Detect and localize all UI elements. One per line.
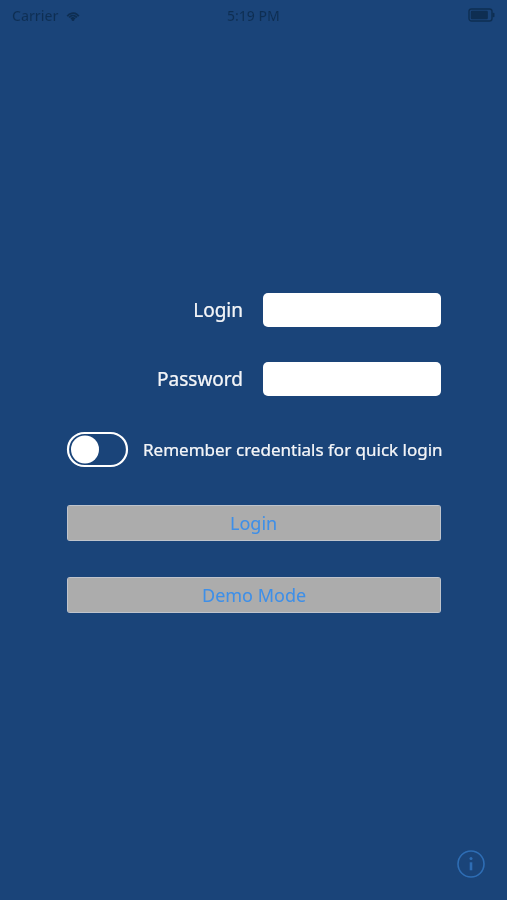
button[interactable]: Remember credentials toggle xyxy=(67,432,128,467)
staticText: Remember credentials for quick login xyxy=(143,438,443,461)
staticText: Password xyxy=(157,366,243,392)
button[interactable]: Demo Mode xyxy=(68,578,440,612)
staticText: Login xyxy=(230,511,278,536)
staticText: Demo Mode xyxy=(202,583,307,608)
button[interactable]: Password input field xyxy=(263,362,441,396)
staticText: Login xyxy=(193,297,243,323)
staticText: Carrier xyxy=(12,6,59,25)
staticText: 5:19 PM xyxy=(227,6,280,25)
button[interactable]: Login input field xyxy=(263,293,441,327)
button[interactable]: Login xyxy=(68,506,440,540)
button[interactable]: Information xyxy=(449,842,493,886)
